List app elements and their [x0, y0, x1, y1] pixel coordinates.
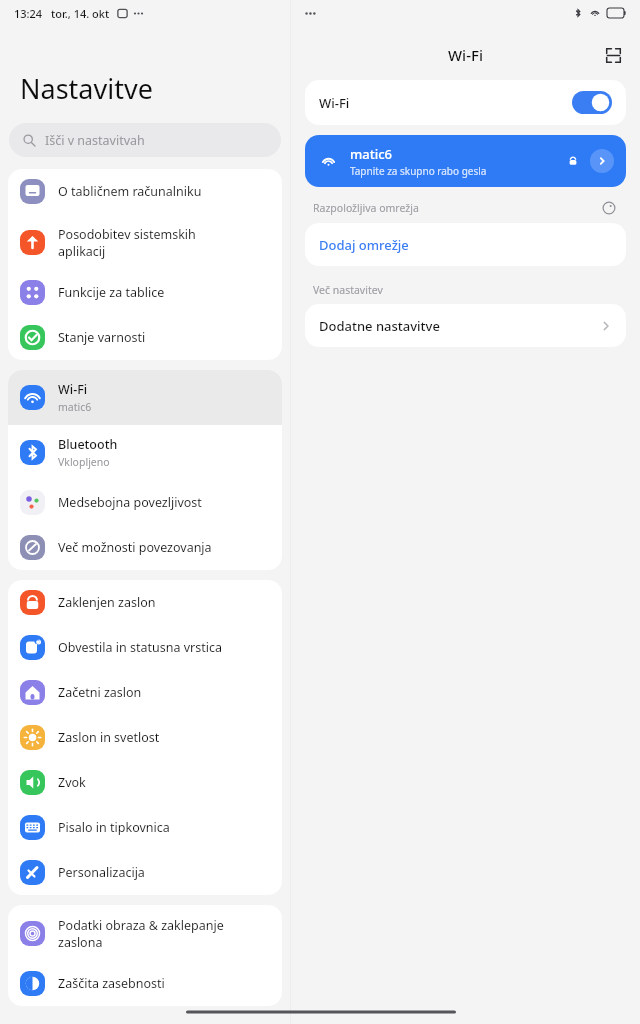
staticText: Wi-Fi: [58, 381, 88, 398]
staticText: Medsebojna povezljivost: [58, 494, 202, 511]
staticText: Začetni zaslon: [58, 684, 142, 701]
button[interactable]: Wi-Fi: [305, 80, 626, 125]
button[interactable]: matic6: [305, 135, 626, 187]
button[interactable]: Scan QR code: [600, 42, 626, 68]
button[interactable]: Refresh networks: [600, 199, 618, 217]
staticText: tor., 14. okt: [51, 6, 110, 21]
button[interactable]: Več možnosti povezovanja: [8, 525, 282, 570]
staticText: Dodaj omrežje: [319, 236, 409, 254]
button[interactable]: Podatki obraza & zaklepanje zaslona: [8, 905, 282, 961]
staticText: Išči v nastavitvah: [45, 132, 145, 149]
staticText: Podatki obraza & zaklepanje zaslona: [58, 917, 224, 950]
staticText: Pisalo in tipkovnica: [58, 819, 170, 836]
staticText: Personalizacija: [58, 864, 145, 881]
staticText: Zaklenjen zaslon: [58, 594, 156, 611]
staticText: matic6: [350, 145, 393, 163]
staticText: Tapnite za skupno rabo gesla: [350, 164, 487, 178]
staticText: Več možnosti povezovanja: [58, 539, 212, 556]
button[interactable]: Funkcije za tablice: [8, 270, 282, 315]
button[interactable]: Obvestila in statusna vrstica: [8, 625, 282, 670]
button[interactable]: Pisalo in tipkovnica: [8, 805, 282, 850]
button[interactable]: Wi-Fi: [8, 370, 282, 425]
button[interactable]: Zaklenjen zaslon: [8, 580, 282, 625]
staticText: Wi-Fi: [448, 45, 483, 65]
staticText: Zvok: [58, 774, 86, 791]
button[interactable]: Zaslon in svetlost: [8, 715, 282, 760]
staticText: Wi-Fi: [319, 94, 350, 112]
button[interactable]: Začetni zaslon: [8, 670, 282, 715]
button[interactable]: Dodatne nastavitve: [305, 304, 626, 347]
staticText: Razpoložljiva omrežja: [313, 201, 419, 215]
staticText: Zaščita zasebnosti: [58, 975, 165, 992]
staticText: Vklopljeno: [58, 455, 110, 469]
button[interactable]: Bluetooth: [8, 425, 282, 480]
staticText: Bluetooth: [58, 436, 118, 453]
button[interactable]: Stanje varnosti: [8, 315, 282, 360]
button[interactable]: Zvok: [8, 760, 282, 805]
staticText: Nastavitve: [20, 70, 153, 107]
button[interactable]: Personalizacija: [8, 850, 282, 895]
staticText: Več nastavitev: [313, 283, 383, 297]
button[interactable]: Zaščita zasebnosti: [8, 961, 282, 1006]
button[interactable]: Dodaj omrežje: [305, 223, 626, 266]
button[interactable]: Network details: [590, 149, 614, 173]
staticText: Zaslon in svetlost: [58, 729, 160, 746]
staticText: Stanje varnosti: [58, 329, 146, 346]
button[interactable]: Išči v nastavitvah: [9, 123, 281, 157]
staticText: matic6: [58, 400, 92, 414]
staticText: Posodobitev sistemskih aplikacij: [58, 226, 196, 259]
button[interactable]: Posodobitev sistemskih aplikacij: [8, 214, 282, 270]
staticText: O tabličnem računalniku: [58, 183, 202, 200]
staticText: 13:24: [14, 6, 43, 21]
staticText: Dodatne nastavitve: [319, 317, 440, 335]
staticText: Obvestila in statusna vrstica: [58, 639, 222, 656]
staticText: Funkcije za tablice: [58, 284, 165, 301]
button[interactable]: Medsebojna povezljivost: [8, 480, 282, 525]
button[interactable]: O tabličnem računalniku: [8, 169, 282, 214]
